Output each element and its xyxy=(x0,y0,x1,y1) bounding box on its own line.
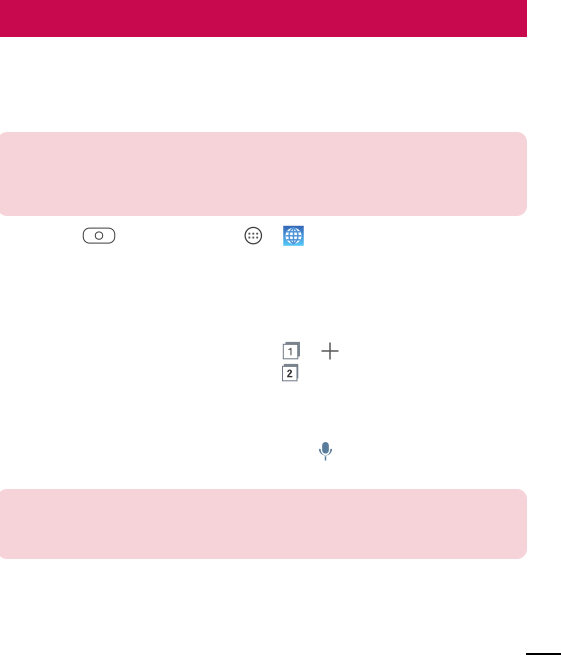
button[interactable]: Add xyxy=(321,342,339,360)
button[interactable]: Home xyxy=(83,228,115,243)
button[interactable]: Browser xyxy=(283,226,304,246)
button[interactable]: Voice search xyxy=(318,442,332,464)
button[interactable]: All apps xyxy=(245,227,261,244)
